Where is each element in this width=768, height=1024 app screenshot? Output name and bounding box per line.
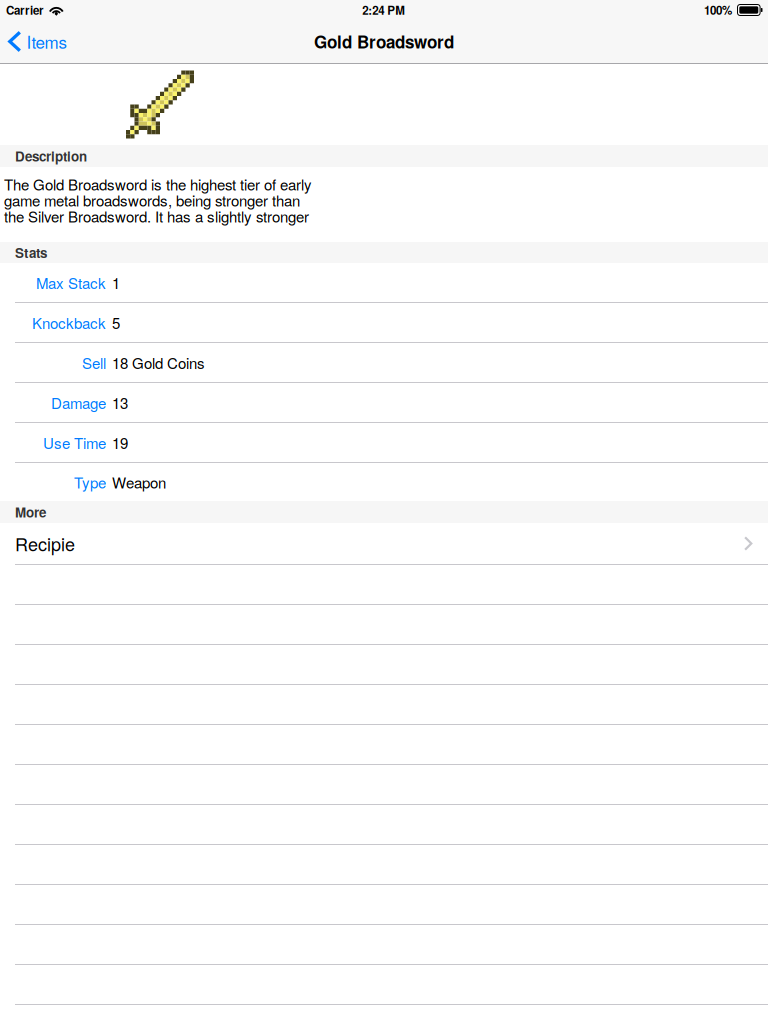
staticText: More	[15, 502, 46, 522]
staticText: Carrier	[6, 2, 44, 18]
staticText: Recipie	[15, 531, 75, 556]
staticText: 18 Gold Coins	[112, 352, 205, 373]
staticText: Max Stack	[36, 272, 106, 293]
button[interactable]: Damage	[0, 383, 768, 423]
staticText: 2:24 PM	[362, 2, 405, 18]
button[interactable]: Sell	[0, 343, 768, 383]
staticText: 1	[112, 272, 120, 293]
staticText: Type	[74, 471, 106, 493]
staticText: 19	[112, 432, 128, 453]
staticText: the Silver Broadsword. It has a slightly…	[4, 205, 309, 227]
staticText: 100%	[704, 2, 732, 18]
staticText: Items	[27, 29, 68, 54]
button[interactable]: Type	[0, 463, 768, 501]
staticText: 13	[112, 392, 128, 413]
button[interactable]: Recipie	[0, 523, 768, 565]
staticText: Stats	[15, 243, 47, 262]
staticText: Description	[15, 146, 87, 166]
button[interactable]: Knockback	[0, 303, 768, 343]
staticText: The Gold Broadsword is the highest tier …	[4, 173, 312, 195]
button[interactable]: Items	[0, 20, 76, 63]
button[interactable]: Use Time	[0, 423, 768, 463]
staticText: Use Time	[43, 432, 106, 453]
staticText: game metal broadswords, being stronger t…	[4, 189, 300, 211]
staticText: Weapon	[112, 471, 166, 493]
button[interactable]: Max Stack	[0, 263, 768, 303]
staticText: Knockback	[32, 312, 106, 333]
staticText: 5	[112, 312, 120, 333]
staticText: Sell	[82, 352, 106, 373]
staticText: Damage	[51, 392, 106, 413]
staticText: Gold Broadsword	[314, 29, 454, 54]
